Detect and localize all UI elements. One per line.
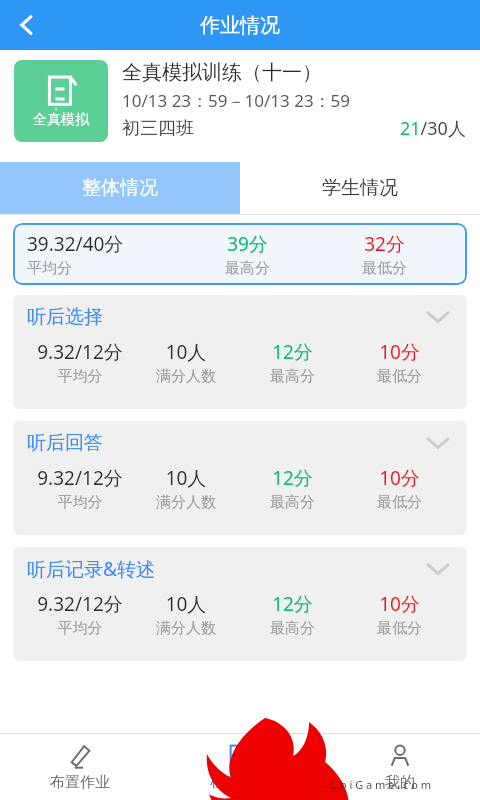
staticText: 听后选择: [27, 305, 103, 329]
staticText: 最高分: [239, 619, 346, 638]
staticText: 10/13 23：59－10/13 23：59: [122, 89, 351, 112]
staticText: 平均分: [27, 493, 133, 512]
staticText: 10人: [133, 591, 239, 617]
staticText: 布置作业: [50, 773, 110, 792]
staticText: 12分: [239, 339, 346, 365]
staticText: 39.32/40分: [27, 231, 179, 257]
staticText: 最低分: [346, 619, 453, 638]
other: Expand: [423, 554, 453, 584]
staticText: 学生情况: [322, 176, 398, 200]
staticText: 全真模拟训练（十一）: [122, 60, 322, 85]
staticText: 检查作业: [210, 773, 270, 792]
other: Expand: [423, 428, 453, 458]
button[interactable]: 我的: [320, 734, 480, 800]
staticText: 平均分: [27, 619, 133, 638]
button[interactable]: 学生情况: [240, 162, 480, 214]
staticText: 12分: [239, 465, 346, 491]
staticText: 最低分: [346, 367, 453, 386]
button[interactable]: 听后记录&转述: [13, 547, 467, 661]
staticText: C b i G a m e . c o m: [330, 777, 431, 792]
staticText: 初三四班: [122, 117, 194, 140]
button[interactable]: 听后选择: [13, 295, 467, 409]
staticText: 9.32/12分: [27, 339, 133, 365]
staticText: 满分人数: [133, 619, 239, 638]
button[interactable]: 39.32/40分: [13, 223, 467, 285]
button[interactable]: 布置作业: [0, 734, 160, 800]
other: Expand: [423, 302, 453, 332]
staticText: 21/30人: [400, 116, 466, 141]
staticText: 9.32/12分: [27, 591, 133, 617]
staticText: 最低分: [316, 259, 453, 278]
staticText: 10人: [133, 339, 239, 365]
staticText: 10分: [346, 465, 453, 491]
staticText: 最高分: [179, 259, 316, 278]
staticText: 听后记录&转述: [27, 556, 155, 582]
staticText: 作业情况: [200, 13, 280, 38]
staticText: 39分: [179, 231, 316, 257]
button[interactable]: Back: [4, 2, 50, 48]
staticText: 整体情况: [82, 176, 158, 200]
staticText: 平均分: [27, 259, 179, 278]
staticText: 我的: [385, 773, 415, 792]
staticText: 10分: [346, 339, 453, 365]
button[interactable]: 整体情况: [0, 162, 240, 214]
button[interactable]: 听后回答: [13, 421, 467, 535]
staticText: 满分人数: [133, 493, 239, 512]
button[interactable]: 全真模拟: [14, 60, 466, 154]
staticText: 全真模拟: [33, 111, 89, 129]
staticText: 10人: [133, 465, 239, 491]
staticText: 最高分: [239, 493, 346, 512]
staticText: 最高分: [239, 367, 346, 386]
staticText: 最低分: [346, 493, 453, 512]
staticText: 12分: [239, 591, 346, 617]
staticText: 9.32/12分: [27, 465, 133, 491]
staticText: 满分人数: [133, 367, 239, 386]
staticText: 32分: [316, 231, 453, 257]
staticText: 10分: [346, 591, 453, 617]
button[interactable]: 检查作业: [160, 734, 320, 800]
staticText: 平均分: [27, 367, 133, 386]
staticText: 听后回答: [27, 431, 103, 455]
